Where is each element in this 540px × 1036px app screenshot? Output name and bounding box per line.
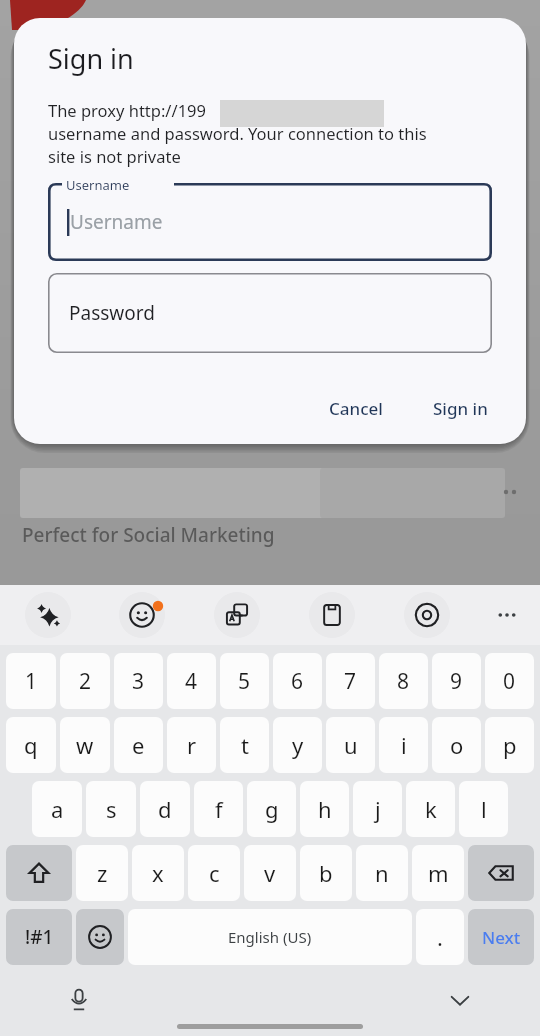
button[interactable]: w — [60, 717, 110, 773]
button[interactable]: 6 — [273, 653, 322, 709]
button[interactable]: j — [353, 781, 402, 837]
staticText: e — [132, 730, 145, 760]
button[interactable]: p — [485, 717, 534, 773]
button[interactable]: q — [6, 717, 56, 773]
staticText: 2 — [79, 667, 92, 696]
button[interactable]: 4 — [167, 653, 216, 709]
staticText: 1 — [25, 667, 38, 696]
button[interactable]: l — [459, 781, 508, 837]
button[interactable]: f — [194, 781, 243, 837]
button[interactable]: Keyboard tool — [25, 592, 71, 638]
button[interactable]: Keyboard tool — [484, 592, 530, 638]
button[interactable]: i — [379, 717, 428, 773]
staticText: x — [152, 858, 164, 888]
button[interactable]: 2 — [60, 653, 110, 709]
button[interactable]: Keyboard tool — [404, 592, 450, 638]
staticText: v — [264, 858, 276, 888]
button[interactable]: o — [432, 717, 481, 773]
staticText: Username — [66, 176, 130, 194]
button[interactable]: Hide keyboard — [437, 977, 483, 1023]
staticText: g — [265, 794, 279, 824]
staticText: l — [481, 794, 487, 824]
staticText: s — [106, 794, 117, 824]
button[interactable]: e — [114, 717, 163, 773]
staticText: 7 — [344, 667, 357, 696]
staticText: o — [450, 730, 464, 760]
staticText: f — [215, 794, 223, 824]
staticText: 4 — [185, 667, 198, 696]
button[interactable]: d — [140, 781, 190, 837]
button[interactable]: Emoji — [76, 909, 124, 965]
staticText: p — [503, 730, 517, 760]
button[interactable]: Keyboard tool — [119, 592, 165, 638]
staticText: 9 — [450, 667, 463, 696]
button[interactable]: . — [416, 909, 464, 965]
button[interactable]: s — [86, 781, 136, 837]
staticText: u — [344, 730, 358, 760]
staticText: Perfect for Social Marketing — [22, 522, 275, 548]
staticText: m — [428, 858, 449, 888]
staticText: 5 — [238, 667, 251, 696]
staticText: Cancel — [329, 397, 383, 420]
staticText: d — [158, 794, 172, 824]
staticText: q — [24, 730, 38, 760]
button[interactable]: Next — [468, 909, 534, 965]
button[interactable]: 7 — [326, 653, 375, 709]
button[interactable]: k — [406, 781, 455, 837]
button[interactable]: 3 — [114, 653, 163, 709]
button[interactable]: v — [244, 845, 296, 901]
staticText: The proxy http://199 requires a username… — [48, 99, 427, 168]
staticText: i — [401, 730, 407, 760]
button[interactable]: y — [273, 717, 322, 773]
button[interactable]: n — [356, 845, 408, 901]
staticText: k — [425, 794, 437, 824]
button[interactable]: 9 — [432, 653, 481, 709]
button[interactable]: Username — [48, 183, 492, 261]
button[interactable]: Password — [48, 273, 492, 353]
staticText: Password — [69, 300, 155, 326]
button[interactable]: Shift — [6, 845, 72, 901]
button[interactable]: !#1 — [6, 909, 72, 965]
button[interactable]: t — [220, 717, 269, 773]
staticText: z — [97, 858, 108, 888]
button[interactable]: 1 — [6, 653, 56, 709]
button[interactable]: b — [300, 845, 352, 901]
button[interactable]: m — [412, 845, 464, 901]
staticText: . — [437, 922, 443, 952]
staticText: y — [292, 730, 304, 760]
button[interactable]: x — [132, 845, 184, 901]
button[interactable]: 8 — [379, 653, 428, 709]
staticText: r — [187, 730, 197, 760]
button[interactable]: 0 — [485, 653, 534, 709]
staticText: 6 — [291, 667, 304, 696]
button[interactable]: Backspace — [468, 845, 534, 901]
staticText: !#1 — [25, 924, 54, 950]
staticText: Sign in — [48, 40, 134, 77]
button[interactable]: 5 — [220, 653, 269, 709]
staticText: b — [319, 858, 333, 888]
button[interactable]: Cancel — [315, 389, 397, 428]
staticText: 0 — [503, 667, 516, 696]
button[interactable]: Keyboard tool — [309, 592, 355, 638]
staticText: t — [241, 730, 249, 760]
button[interactable]: Sign in — [419, 389, 502, 428]
staticText: 8 — [397, 667, 410, 696]
staticText: w — [76, 730, 94, 760]
button[interactable]: g — [247, 781, 296, 837]
button[interactable]: a — [32, 781, 82, 837]
staticText: j — [375, 794, 381, 824]
staticText: h — [318, 794, 332, 824]
button[interactable]: u — [326, 717, 375, 773]
button[interactable]: Keyboard tool — [214, 592, 260, 638]
button[interactable]: r — [167, 717, 216, 773]
button[interactable]: h — [300, 781, 349, 837]
staticText: Username — [70, 209, 163, 235]
staticText: c — [209, 858, 220, 888]
button[interactable]: English (US) — [128, 909, 412, 965]
button[interactable]: z — [76, 845, 128, 901]
staticText: a — [51, 794, 64, 824]
staticText: Sign in — [433, 397, 488, 420]
button[interactable]: Voice input — [56, 977, 102, 1023]
button[interactable]: c — [188, 845, 240, 901]
staticText: 3 — [132, 667, 145, 696]
